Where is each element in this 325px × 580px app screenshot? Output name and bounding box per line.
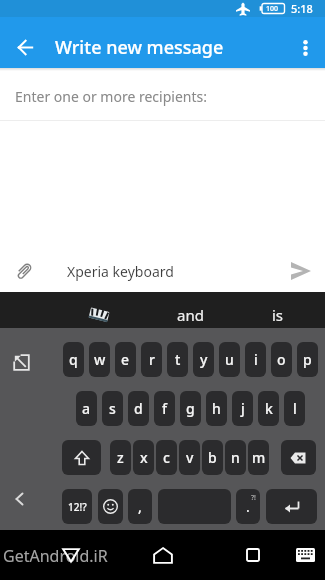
button[interactable] bbox=[12, 491, 28, 507]
staticText: 12!? bbox=[68, 500, 87, 514]
button[interactable]: p bbox=[297, 342, 318, 377]
button[interactable]: o bbox=[271, 342, 292, 377]
staticText: u bbox=[225, 350, 234, 369]
staticText: v bbox=[186, 448, 194, 467]
button[interactable]: q bbox=[63, 342, 84, 377]
staticText: Write new message bbox=[55, 35, 224, 60]
button[interactable] bbox=[266, 489, 317, 524]
button[interactable]: k bbox=[258, 391, 279, 426]
button[interactable] bbox=[158, 489, 231, 524]
button[interactable]: r bbox=[141, 342, 162, 377]
button[interactable]: , bbox=[128, 489, 152, 524]
staticText: w bbox=[94, 350, 106, 369]
button[interactable] bbox=[281, 440, 316, 475]
button[interactable]: z bbox=[110, 440, 131, 475]
staticText: 5:18 bbox=[291, 1, 313, 16]
button[interactable]: i bbox=[245, 342, 266, 377]
staticText: ?! bbox=[251, 493, 256, 503]
staticText: and bbox=[177, 305, 204, 325]
button[interactable]: x bbox=[133, 440, 154, 475]
button[interactable] bbox=[88, 307, 110, 323]
staticText: r bbox=[149, 350, 155, 369]
staticText: l bbox=[293, 399, 297, 418]
button[interactable]: a bbox=[76, 391, 97, 426]
button[interactable]: h bbox=[206, 391, 227, 426]
button[interactable]: b bbox=[202, 440, 223, 475]
staticText: Xperia keyboard bbox=[67, 262, 290, 281]
staticText: d bbox=[134, 399, 143, 418]
staticText: f bbox=[162, 399, 167, 418]
staticText: q bbox=[69, 350, 78, 369]
staticText: x bbox=[140, 448, 148, 467]
staticText: c bbox=[163, 448, 170, 467]
staticText: z bbox=[117, 448, 124, 467]
staticText: g bbox=[186, 399, 195, 418]
button[interactable]: u bbox=[219, 342, 240, 377]
button[interactable]: y bbox=[193, 342, 214, 377]
button[interactable]: is bbox=[253, 297, 303, 333]
button[interactable]: f bbox=[154, 391, 175, 426]
button[interactable]: s bbox=[102, 391, 123, 426]
staticText: GetAndroid.iR bbox=[3, 545, 108, 567]
staticText: y bbox=[200, 350, 208, 369]
button[interactable]: n bbox=[225, 440, 246, 475]
button[interactable] bbox=[287, 535, 323, 575]
staticText: o bbox=[277, 350, 286, 369]
button[interactable]: j bbox=[232, 391, 253, 426]
button[interactable] bbox=[230, 533, 276, 577]
button[interactable] bbox=[48, 533, 94, 577]
button[interactable]: g bbox=[180, 391, 201, 426]
button[interactable]: ?! bbox=[236, 489, 260, 524]
staticText: , bbox=[138, 497, 142, 516]
button[interactable] bbox=[98, 489, 123, 524]
staticText: h bbox=[212, 399, 221, 418]
staticText: p bbox=[303, 350, 312, 369]
staticText: j bbox=[241, 399, 245, 418]
staticText: b bbox=[208, 448, 217, 467]
button[interactable]: 12!? bbox=[62, 489, 92, 524]
button[interactable]: e bbox=[115, 342, 136, 377]
button[interactable]: Enter one or more recipients: bbox=[0, 68, 325, 120]
staticText: . bbox=[246, 497, 250, 516]
button[interactable]: t bbox=[167, 342, 188, 377]
staticText: t bbox=[175, 350, 181, 369]
staticText: e bbox=[121, 350, 130, 369]
button[interactable] bbox=[0, 27, 50, 68]
button[interactable]: v bbox=[179, 440, 200, 475]
button[interactable]: and bbox=[160, 297, 220, 333]
staticText: Enter one or more recipients: bbox=[15, 87, 207, 106]
staticText: n bbox=[231, 448, 240, 467]
staticText: i bbox=[254, 350, 258, 369]
button[interactable] bbox=[286, 27, 324, 68]
button[interactable]: m bbox=[248, 440, 269, 475]
staticText: k bbox=[265, 399, 273, 418]
button[interactable]: c bbox=[156, 440, 177, 475]
button[interactable]: d bbox=[128, 391, 149, 426]
staticText: s bbox=[109, 399, 116, 418]
staticText: a bbox=[82, 399, 91, 418]
staticText: is bbox=[272, 305, 284, 325]
button[interactable] bbox=[140, 533, 186, 577]
button[interactable] bbox=[12, 353, 31, 372]
button[interactable]: l bbox=[284, 391, 305, 426]
button[interactable]: w bbox=[89, 342, 110, 377]
button[interactable] bbox=[62, 440, 101, 475]
staticText: m bbox=[252, 448, 266, 467]
button[interactable]: Xperia keyboard bbox=[0, 250, 325, 292]
staticText: 100 bbox=[266, 4, 279, 14]
